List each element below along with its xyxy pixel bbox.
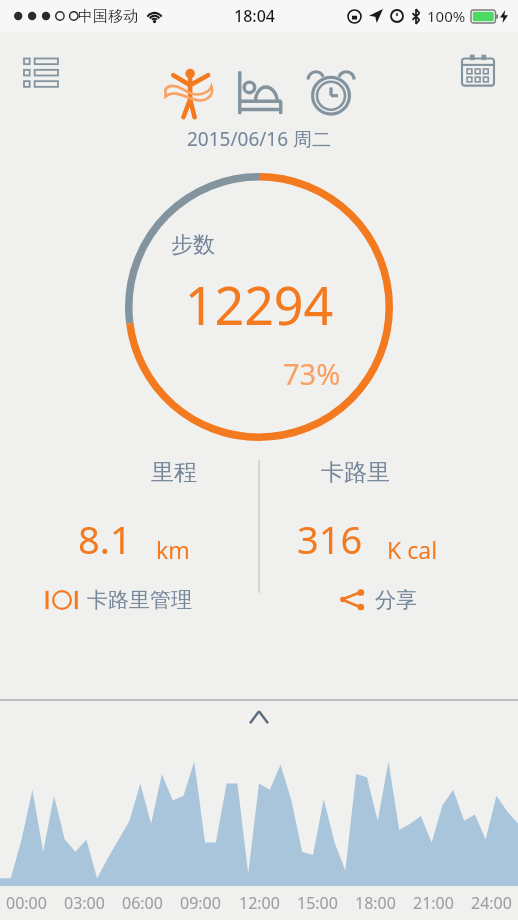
staticText: 卡路里 [321, 458, 390, 487]
staticText: 09:00 [180, 892, 221, 914]
staticText: 12294 [125, 269, 393, 340]
staticText: 2015/06/16 周二 [187, 126, 332, 152]
staticText: 316 [297, 513, 363, 565]
staticText: 06:00 [122, 892, 163, 914]
button[interactable]: Alarm [301, 62, 361, 122]
staticText: 24:00 [471, 892, 512, 914]
staticText: 03:00 [64, 892, 105, 914]
button[interactable]: Steps [157, 60, 221, 124]
staticText: 100% [427, 6, 466, 26]
staticText: 21:00 [413, 892, 454, 914]
staticText: 18:04 [234, 5, 275, 27]
staticText: 8.1 [78, 513, 132, 565]
button[interactable]: Calendar [458, 50, 498, 90]
staticText: km [156, 534, 190, 565]
staticText: 18:00 [355, 892, 396, 914]
staticText: 15:00 [297, 892, 338, 914]
button[interactable]: List [20, 52, 62, 94]
button[interactable]: Sleep [229, 61, 291, 123]
staticText: 00:00 [6, 892, 47, 914]
button[interactable]: 卡路里管理 [45, 587, 259, 612]
button[interactable]: 分享 [339, 587, 518, 612]
staticText: 12:00 [239, 892, 280, 914]
staticText: 73% [283, 354, 341, 393]
staticText: 里程 [151, 458, 197, 487]
staticText: 卡路里管理 [87, 587, 192, 612]
staticText: 中国移动 [78, 7, 138, 26]
staticText: 步数 [171, 231, 215, 259]
staticText: 分享 [375, 587, 417, 612]
staticText: K cal [387, 534, 438, 565]
